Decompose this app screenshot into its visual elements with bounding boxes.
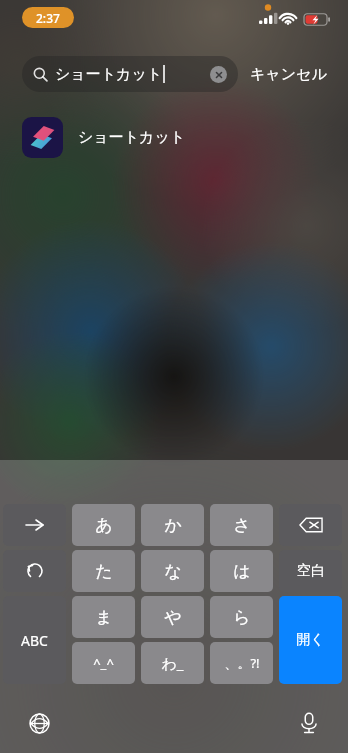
button[interactable]: Dictation [294,708,324,738]
staticText: 、。?! [224,654,260,672]
button[interactable]: あ [72,504,135,546]
button[interactable]: ら [210,596,273,638]
button[interactable]: ABC [3,596,66,684]
staticText: ショートカット [78,128,186,147]
button[interactable]: Delete [279,504,342,546]
staticText: あ [95,515,113,536]
button[interactable]: Clear text [210,66,227,83]
staticText: は [233,561,251,582]
staticText: わ_ [161,653,184,673]
button[interactable]: 、。?! [210,642,273,684]
button[interactable]: ショートカット [0,109,348,165]
button[interactable]: は [210,550,273,592]
button[interactable]: Change keyboard [24,708,54,738]
staticText: ^_^ [93,654,114,672]
button[interactable]: ま [72,596,135,638]
staticText: か [164,515,182,536]
button[interactable]: わ_ [141,642,204,684]
button[interactable]: 空白 [279,550,342,592]
staticText: ショートカット [55,65,163,84]
button[interactable]: さ [210,504,273,546]
staticText: た [95,561,113,582]
button[interactable]: 開く [279,596,342,684]
staticText: ら [233,607,251,628]
button[interactable]: や [141,596,204,638]
button[interactable]: な [141,550,204,592]
button[interactable]: キャンセル [250,56,327,92]
staticText: ABC [21,631,48,650]
button[interactable]: Undo [3,550,66,592]
staticText: や [164,607,182,628]
button[interactable]: か [141,504,204,546]
staticText: 2:37 [36,10,60,26]
button[interactable]: ^_^ [72,642,135,684]
button[interactable]: Next candidate [3,504,66,546]
staticText: ま [95,607,113,628]
staticText: さ [233,515,251,536]
staticText: な [164,561,182,582]
staticText: 空白 [297,562,325,580]
staticText: 開く [296,631,325,649]
button[interactable]: た [72,550,135,592]
staticText: キャンセル [250,65,327,84]
button[interactable]: ショートカット [22,56,238,92]
